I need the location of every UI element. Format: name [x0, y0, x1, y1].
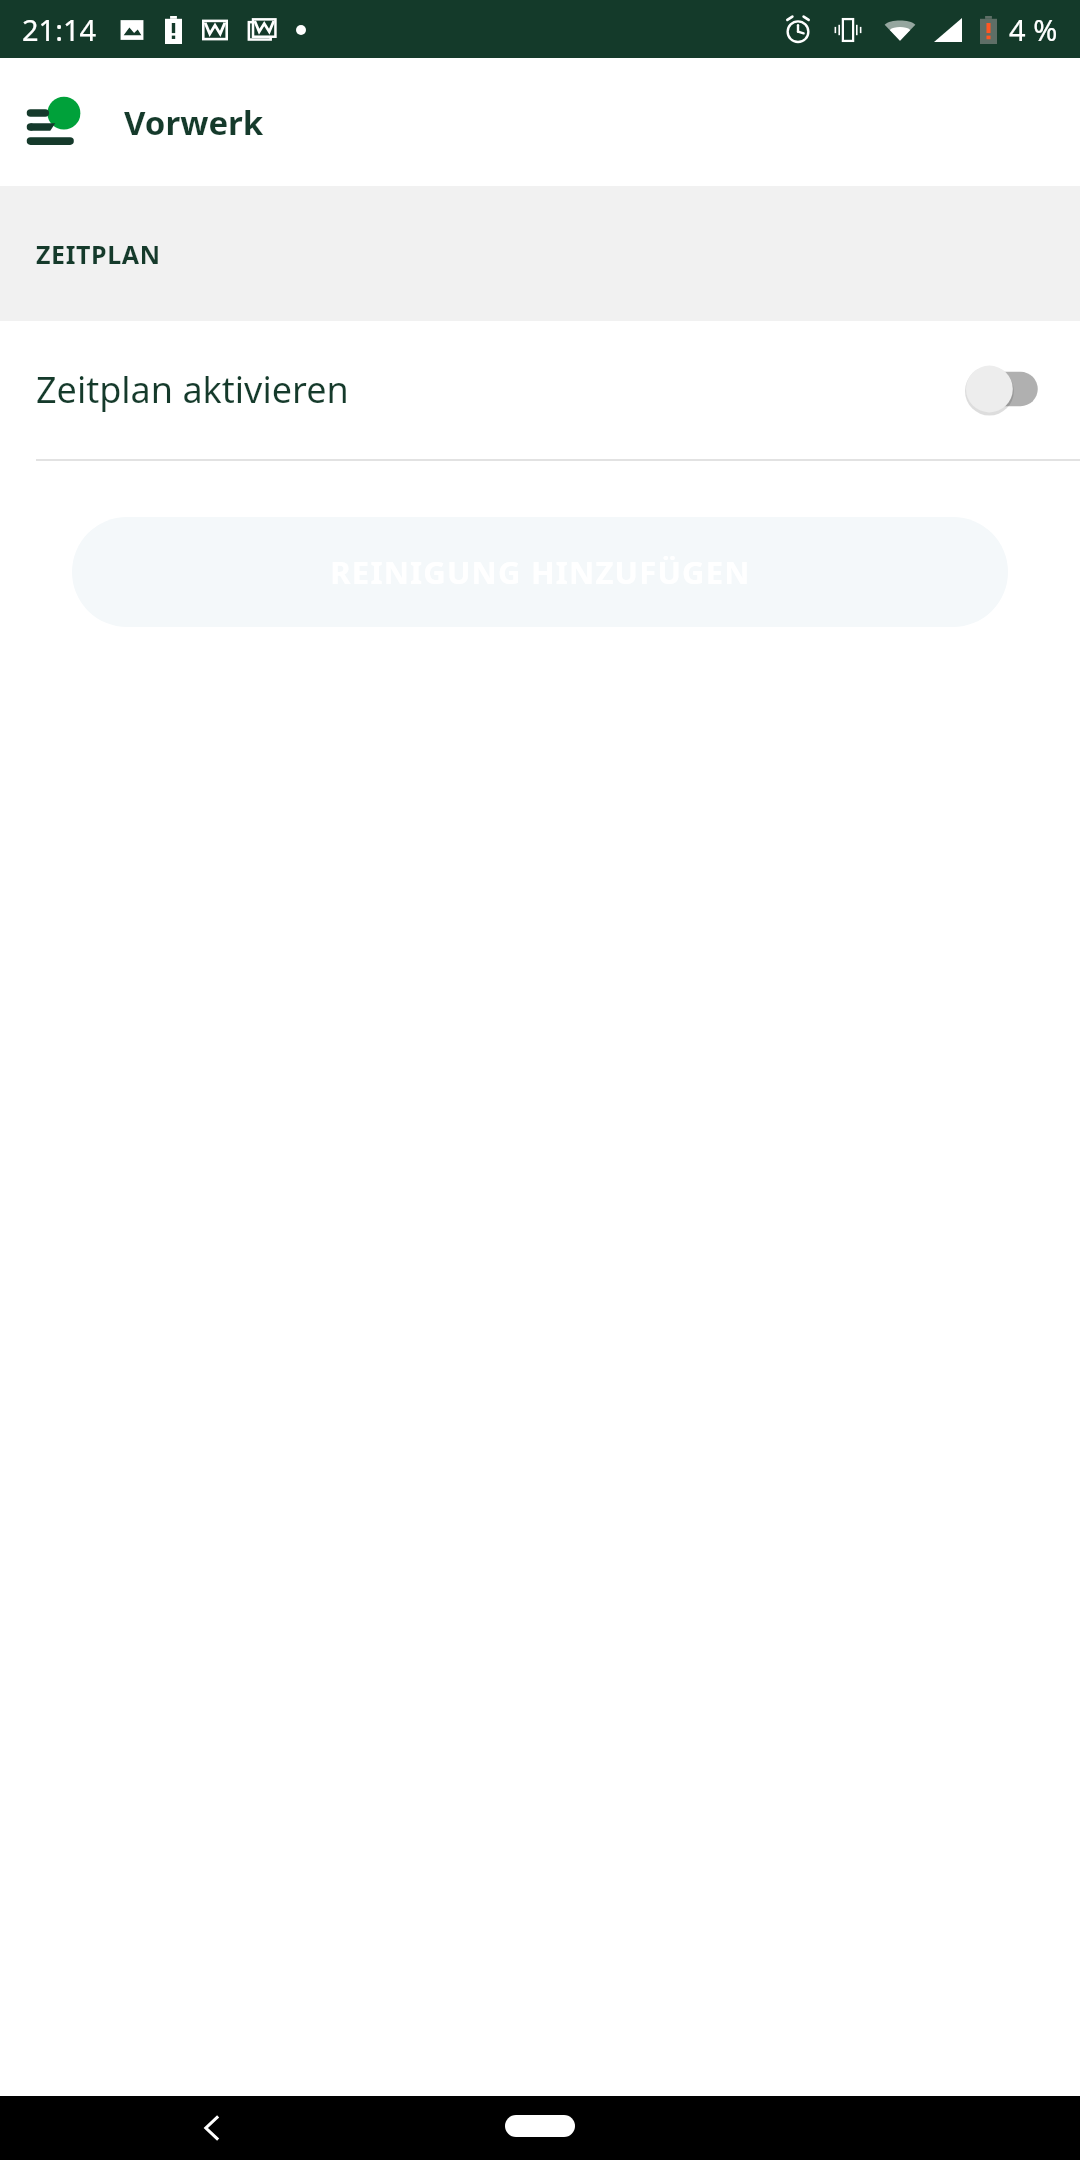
button[interactable]: Menu	[14, 82, 94, 162]
button[interactable]: Zeitplan aktivieren Schalter	[966, 363, 1044, 415]
staticText: ZEITPLAN	[36, 237, 161, 271]
staticText: Vorwerk	[124, 100, 264, 145]
staticText: REINIGUNG HINZUFÜGEN	[330, 551, 751, 593]
staticText: 4 %	[1009, 10, 1058, 49]
staticText: 21:14	[22, 10, 97, 49]
button[interactable]: Back	[180, 2096, 244, 2160]
button[interactable]: Home	[485, 2106, 595, 2146]
button[interactable]: Zeitplan aktivieren	[0, 321, 1080, 457]
staticText: Zeitplan aktivieren	[36, 365, 349, 414]
